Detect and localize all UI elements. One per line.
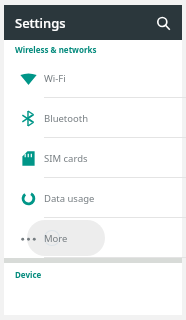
staticText: Settings [15, 14, 66, 32]
staticText: Data usage [44, 192, 95, 205]
button[interactable]: Wi-Fi [4, 58, 182, 98]
button[interactable]: More [4, 218, 182, 258]
staticText: Wireless & networks [15, 44, 97, 55]
staticText: SIM cards [44, 152, 88, 165]
button[interactable]: Search [150, 10, 176, 36]
staticText: More [44, 232, 68, 245]
staticText: Device [15, 269, 42, 280]
button[interactable]: Data usage [4, 178, 182, 218]
staticText: Bluetooth [44, 112, 89, 125]
staticText: Wi-Fi [44, 72, 66, 85]
button[interactable]: Bluetooth [4, 98, 182, 138]
button[interactable]: SIM cards [4, 138, 182, 178]
